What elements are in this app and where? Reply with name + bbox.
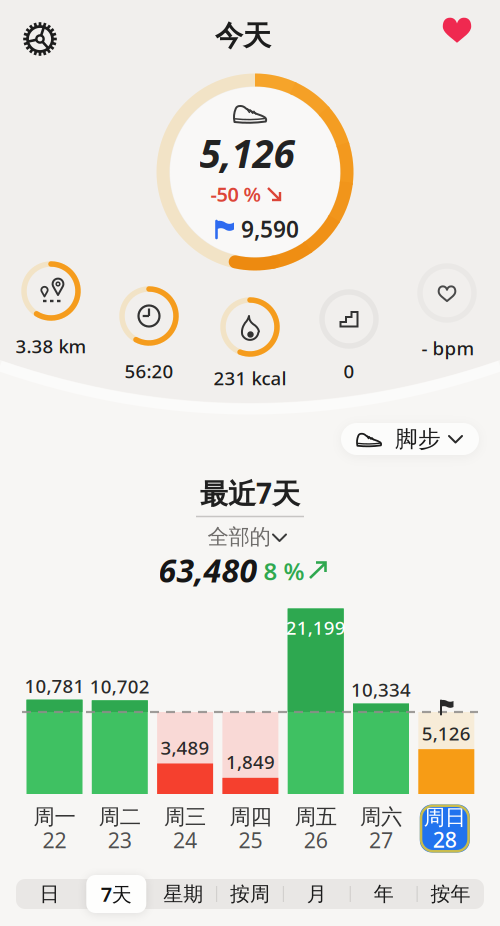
staticText: 25 bbox=[238, 826, 262, 854]
staticText: 按周 bbox=[230, 882, 270, 906]
staticText: 23 bbox=[108, 826, 132, 854]
button[interactable]: 按年 bbox=[417, 879, 484, 909]
button[interactable]: 星期 bbox=[150, 879, 217, 909]
staticText: 22 bbox=[42, 826, 66, 854]
staticText: 0 bbox=[343, 359, 354, 383]
staticText: 1,849 bbox=[226, 749, 275, 774]
button[interactable]: 年 bbox=[350, 879, 417, 909]
staticText: 全部的 bbox=[207, 524, 270, 550]
staticText: 63,480 bbox=[158, 549, 257, 591]
staticText: 24 bbox=[173, 826, 197, 854]
button[interactable]: 日 bbox=[16, 879, 83, 909]
staticText: 8 % bbox=[263, 555, 304, 587]
button[interactable]: 周日 bbox=[420, 804, 470, 852]
staticText: 28 bbox=[433, 825, 457, 854]
button[interactable]: 按周 bbox=[217, 879, 283, 909]
staticText: 周日 bbox=[424, 804, 466, 831]
staticText: 周六 bbox=[360, 804, 402, 830]
staticText: 10,702 bbox=[90, 674, 150, 699]
staticText: 7天 bbox=[101, 881, 132, 907]
staticText: 9,590 bbox=[241, 214, 299, 244]
button[interactable]: 月 bbox=[283, 879, 350, 909]
staticText: 周四 bbox=[229, 804, 271, 830]
staticText: 最近7天 bbox=[200, 474, 300, 512]
staticText: 按年 bbox=[431, 882, 471, 906]
staticText: 月 bbox=[307, 882, 327, 906]
staticText: 周一 bbox=[33, 804, 75, 830]
staticText: -50 % bbox=[210, 181, 261, 207]
staticText: 年 bbox=[374, 882, 394, 906]
staticText: 周五 bbox=[295, 804, 337, 830]
staticText: 今天 bbox=[215, 19, 271, 53]
staticText: 10,781 bbox=[24, 673, 84, 698]
staticText: 56:20 bbox=[124, 359, 173, 383]
staticText: 3,489 bbox=[161, 735, 210, 760]
button[interactable]: 全部的 bbox=[195, 526, 305, 548]
staticText: 星期 bbox=[163, 882, 203, 906]
button[interactable]: 7天 bbox=[86, 875, 146, 913]
staticText: 27 bbox=[369, 826, 393, 854]
button[interactable]: 脚步 bbox=[341, 423, 479, 455]
staticText: 5,126 bbox=[199, 127, 294, 179]
staticText: 231 kcal bbox=[213, 366, 286, 390]
staticText: 脚步 bbox=[395, 425, 441, 453]
button[interactable]: Favorites bbox=[437, 10, 477, 50]
button[interactable]: Settings bbox=[18, 17, 62, 61]
staticText: 3.38 km bbox=[15, 334, 86, 358]
staticText: - bpm bbox=[421, 336, 474, 360]
staticText: 5,126 bbox=[422, 721, 471, 746]
staticText: 周二 bbox=[99, 804, 141, 830]
staticText: 日 bbox=[39, 882, 59, 906]
staticText: 26 bbox=[304, 826, 328, 854]
staticText: 周三 bbox=[164, 804, 206, 830]
staticText: 21,199 bbox=[286, 615, 346, 640]
staticText: 10,334 bbox=[351, 677, 411, 702]
